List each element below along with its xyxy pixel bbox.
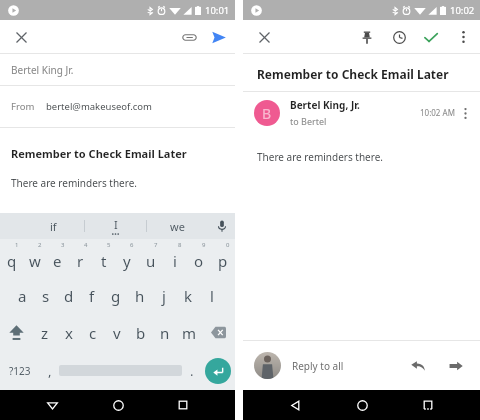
staticText: k (184, 286, 193, 306)
staticText: c (89, 323, 97, 343)
button[interactable]: . (182, 351, 201, 390)
button[interactable]: b (129, 314, 153, 351)
button[interactable]: 1 (0, 239, 23, 277)
button[interactable]: Reply to all (292, 341, 406, 390)
button[interactable]: Back (40, 393, 64, 417)
button[interactable]: f (80, 277, 104, 314)
button[interactable]: Snooze (386, 24, 412, 50)
button[interactable]: Close (8, 24, 34, 50)
button[interactable]: n (153, 314, 177, 351)
staticText: 4 (84, 241, 88, 249)
button[interactable]: More options (450, 24, 476, 50)
button[interactable]: d (57, 277, 80, 314)
staticText: 3 (61, 241, 65, 249)
staticText: Bertel King Jr. (11, 63, 74, 77)
staticText: There are reminders there. (257, 150, 383, 164)
staticText: B (262, 104, 272, 123)
button[interactable]: v (105, 314, 129, 351)
staticText: Remember to Check Email Later (257, 66, 449, 82)
staticText: Bertel King, Jr. (290, 98, 360, 112)
button[interactable]: Recents (171, 393, 195, 417)
button[interactable]: l (200, 277, 224, 314)
staticText: 10:01 (205, 4, 230, 17)
button[interactable]: 0 (211, 239, 235, 277)
staticText: I (114, 217, 118, 232)
staticText: 5 (107, 241, 111, 249)
button[interactable]: 7 (139, 239, 163, 277)
button[interactable]: h (128, 277, 152, 314)
button[interactable]: 3 (46, 239, 69, 277)
button[interactable]: Enter (205, 358, 231, 384)
button[interactable]: j (152, 277, 176, 314)
staticText: y (123, 251, 131, 271)
button[interactable]: Backspace (201, 314, 235, 351)
staticText: 9 (202, 241, 206, 249)
button[interactable]: x (57, 314, 81, 351)
button[interactable]: k (176, 277, 200, 314)
staticText: i (173, 251, 177, 271)
staticText: z (41, 323, 49, 343)
button[interactable]: Reply (406, 354, 430, 378)
staticText: 1 (15, 241, 19, 249)
button[interactable]: z (33, 314, 57, 351)
staticText: 0 (226, 241, 230, 249)
staticText: 10:02 AM (420, 107, 455, 118)
staticText: f (89, 286, 95, 306)
button[interactable]: Back (283, 393, 307, 417)
staticText: o (194, 251, 204, 271)
staticText: w (29, 251, 41, 271)
button[interactable]: 4 (69, 239, 92, 277)
button[interactable]: Home (350, 393, 374, 417)
staticText: Reply to all (292, 359, 344, 373)
button[interactable]: Recents (416, 393, 440, 417)
staticText: m (182, 323, 197, 343)
staticText: l (210, 286, 214, 306)
staticText: t (101, 251, 107, 271)
staticText: e (53, 251, 62, 271)
staticText: 6 (130, 241, 134, 249)
button[interactable]: 8 (163, 239, 187, 277)
button[interactable]: I (85, 213, 146, 239)
button[interactable]: ?123 (0, 351, 40, 390)
staticText: q (7, 251, 17, 271)
staticText: bertel@makeuseof.com (46, 100, 152, 113)
button[interactable]: s (34, 277, 57, 314)
staticText: h (135, 286, 145, 306)
staticText: ?123 (9, 364, 31, 378)
button[interactable]: Space (59, 351, 182, 390)
button[interactable]: 6 (115, 239, 139, 277)
button[interactable]: More options (455, 103, 475, 123)
button[interactable]: Pin (354, 24, 380, 50)
staticText: we (170, 219, 185, 234)
staticText: a (18, 286, 27, 306)
staticText: s (42, 286, 50, 306)
button[interactable]: 5 (92, 239, 115, 277)
staticText: b (136, 323, 146, 343)
button[interactable]: Home (106, 393, 130, 417)
staticText: There are reminders there. (11, 176, 137, 190)
button[interactable]: Shift (0, 314, 33, 351)
button[interactable]: Voice input (208, 213, 235, 239)
staticText: j (162, 286, 166, 306)
staticText: 8 (178, 241, 182, 249)
button[interactable]: Forward (444, 354, 468, 378)
staticText: x (65, 323, 73, 343)
staticText: n (160, 323, 170, 343)
button[interactable]: if (22, 213, 84, 239)
button[interactable]: Close (251, 24, 277, 50)
button[interactable]: m (177, 314, 201, 351)
staticText: to Bertel (290, 115, 327, 127)
button[interactable]: a (11, 277, 34, 314)
staticText: g (111, 286, 121, 306)
button[interactable]: 2 (23, 239, 46, 277)
staticText: r (77, 251, 84, 271)
button[interactable]: g (104, 277, 128, 314)
button[interactable]: Done (418, 24, 444, 50)
staticText: p (218, 251, 228, 271)
button[interactable]: Send (207, 25, 231, 49)
button[interactable]: we (147, 213, 208, 239)
button[interactable]: 9 (187, 239, 211, 277)
button[interactable]: Attach file (177, 25, 201, 49)
button[interactable]: c (81, 314, 105, 351)
button[interactable]: , (40, 351, 59, 390)
